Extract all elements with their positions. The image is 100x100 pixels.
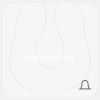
button[interactable]: Notifications [74,75,96,97]
staticText: Upcoming [26,51,74,63]
